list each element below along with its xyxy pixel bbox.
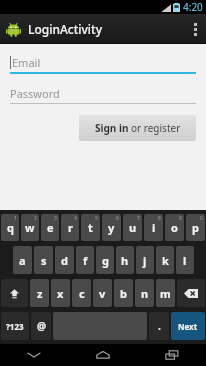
button[interactable]: Recent apps xyxy=(137,344,206,366)
button[interactable]: w xyxy=(21,214,39,241)
button[interactable]: h xyxy=(116,246,134,274)
button[interactable]: q xyxy=(1,214,19,241)
staticText: 4:20 xyxy=(183,0,203,14)
button[interactable]: More options xyxy=(184,14,206,44)
staticText: p xyxy=(192,220,199,235)
button[interactable]: a xyxy=(13,246,32,274)
button[interactable]: o xyxy=(165,214,184,241)
button[interactable]: x xyxy=(51,279,70,307)
button[interactable]: Home xyxy=(68,344,137,366)
button[interactable]: n xyxy=(135,279,154,307)
button[interactable]: Backspace xyxy=(177,279,205,307)
staticText: LoginActivity xyxy=(28,21,103,37)
staticText: f xyxy=(83,253,88,268)
staticText: n xyxy=(141,286,149,301)
button[interactable]: s xyxy=(34,246,53,274)
staticText: 5 xyxy=(95,215,98,222)
staticText: 1 xyxy=(14,215,17,222)
staticText: y xyxy=(108,220,115,235)
staticText: Sign in or register xyxy=(95,121,181,135)
staticText: u xyxy=(129,220,137,235)
staticText: r xyxy=(68,220,73,235)
button[interactable]: d xyxy=(55,246,74,274)
button[interactable]: k xyxy=(156,246,174,274)
button[interactable]: b xyxy=(114,279,133,307)
button[interactable]: @ xyxy=(31,312,51,340)
button[interactable]: j xyxy=(136,246,154,274)
button[interactable]: z xyxy=(30,279,49,307)
button[interactable]: Sign in or register xyxy=(79,115,196,141)
button[interactable]: e xyxy=(41,214,59,241)
staticText: g xyxy=(102,253,109,268)
staticText: b xyxy=(120,286,127,301)
button[interactable]: f xyxy=(76,246,94,274)
staticText: s xyxy=(41,253,47,268)
staticText: ?123 xyxy=(6,321,24,332)
staticText: a xyxy=(19,253,26,268)
staticText: Email xyxy=(12,55,41,70)
button[interactable]: Back xyxy=(0,344,68,366)
button[interactable]: . xyxy=(149,312,169,340)
staticText: l xyxy=(183,253,187,268)
staticText: o xyxy=(171,220,178,235)
staticText: x xyxy=(57,286,64,301)
staticText: Password xyxy=(10,86,60,101)
button[interactable]: Next xyxy=(171,312,205,340)
button[interactable]: u xyxy=(123,214,142,241)
button[interactable]: r xyxy=(61,214,79,241)
staticText: z xyxy=(37,286,43,301)
staticText: k xyxy=(162,253,169,268)
staticText: 0 xyxy=(200,215,203,222)
button[interactable]: y xyxy=(102,214,121,241)
staticText: t xyxy=(88,220,93,235)
button[interactable]: c xyxy=(72,279,91,307)
staticText: m xyxy=(160,286,171,301)
button[interactable]: t xyxy=(81,214,100,241)
button[interactable]: ?123 xyxy=(1,312,29,340)
staticText: 9 xyxy=(179,215,182,222)
staticText: @ xyxy=(37,319,46,333)
staticText: q xyxy=(7,220,14,235)
button[interactable]: g xyxy=(96,246,114,274)
staticText: 8 xyxy=(158,215,161,222)
staticText: j xyxy=(143,253,147,268)
button[interactable]: Shift xyxy=(1,279,28,307)
button[interactable]: p xyxy=(186,214,205,241)
staticText: v xyxy=(99,286,106,301)
button[interactable]: m xyxy=(156,279,175,307)
staticText: w xyxy=(25,220,35,235)
button[interactable]: i xyxy=(144,214,163,241)
staticText: 6 xyxy=(116,215,119,222)
staticText: 4 xyxy=(74,215,77,222)
staticText: i xyxy=(152,220,156,235)
staticText: 2 xyxy=(34,215,37,222)
staticText: . xyxy=(158,319,161,333)
button[interactable]: v xyxy=(93,279,112,307)
staticText: 7 xyxy=(137,215,140,222)
staticText: h xyxy=(121,253,129,268)
staticText: c xyxy=(79,286,85,301)
staticText: d xyxy=(61,253,68,268)
staticText: 3 xyxy=(54,215,57,222)
staticText: e xyxy=(47,220,54,235)
button[interactable]: l xyxy=(176,246,194,274)
staticText: Next xyxy=(178,321,198,332)
